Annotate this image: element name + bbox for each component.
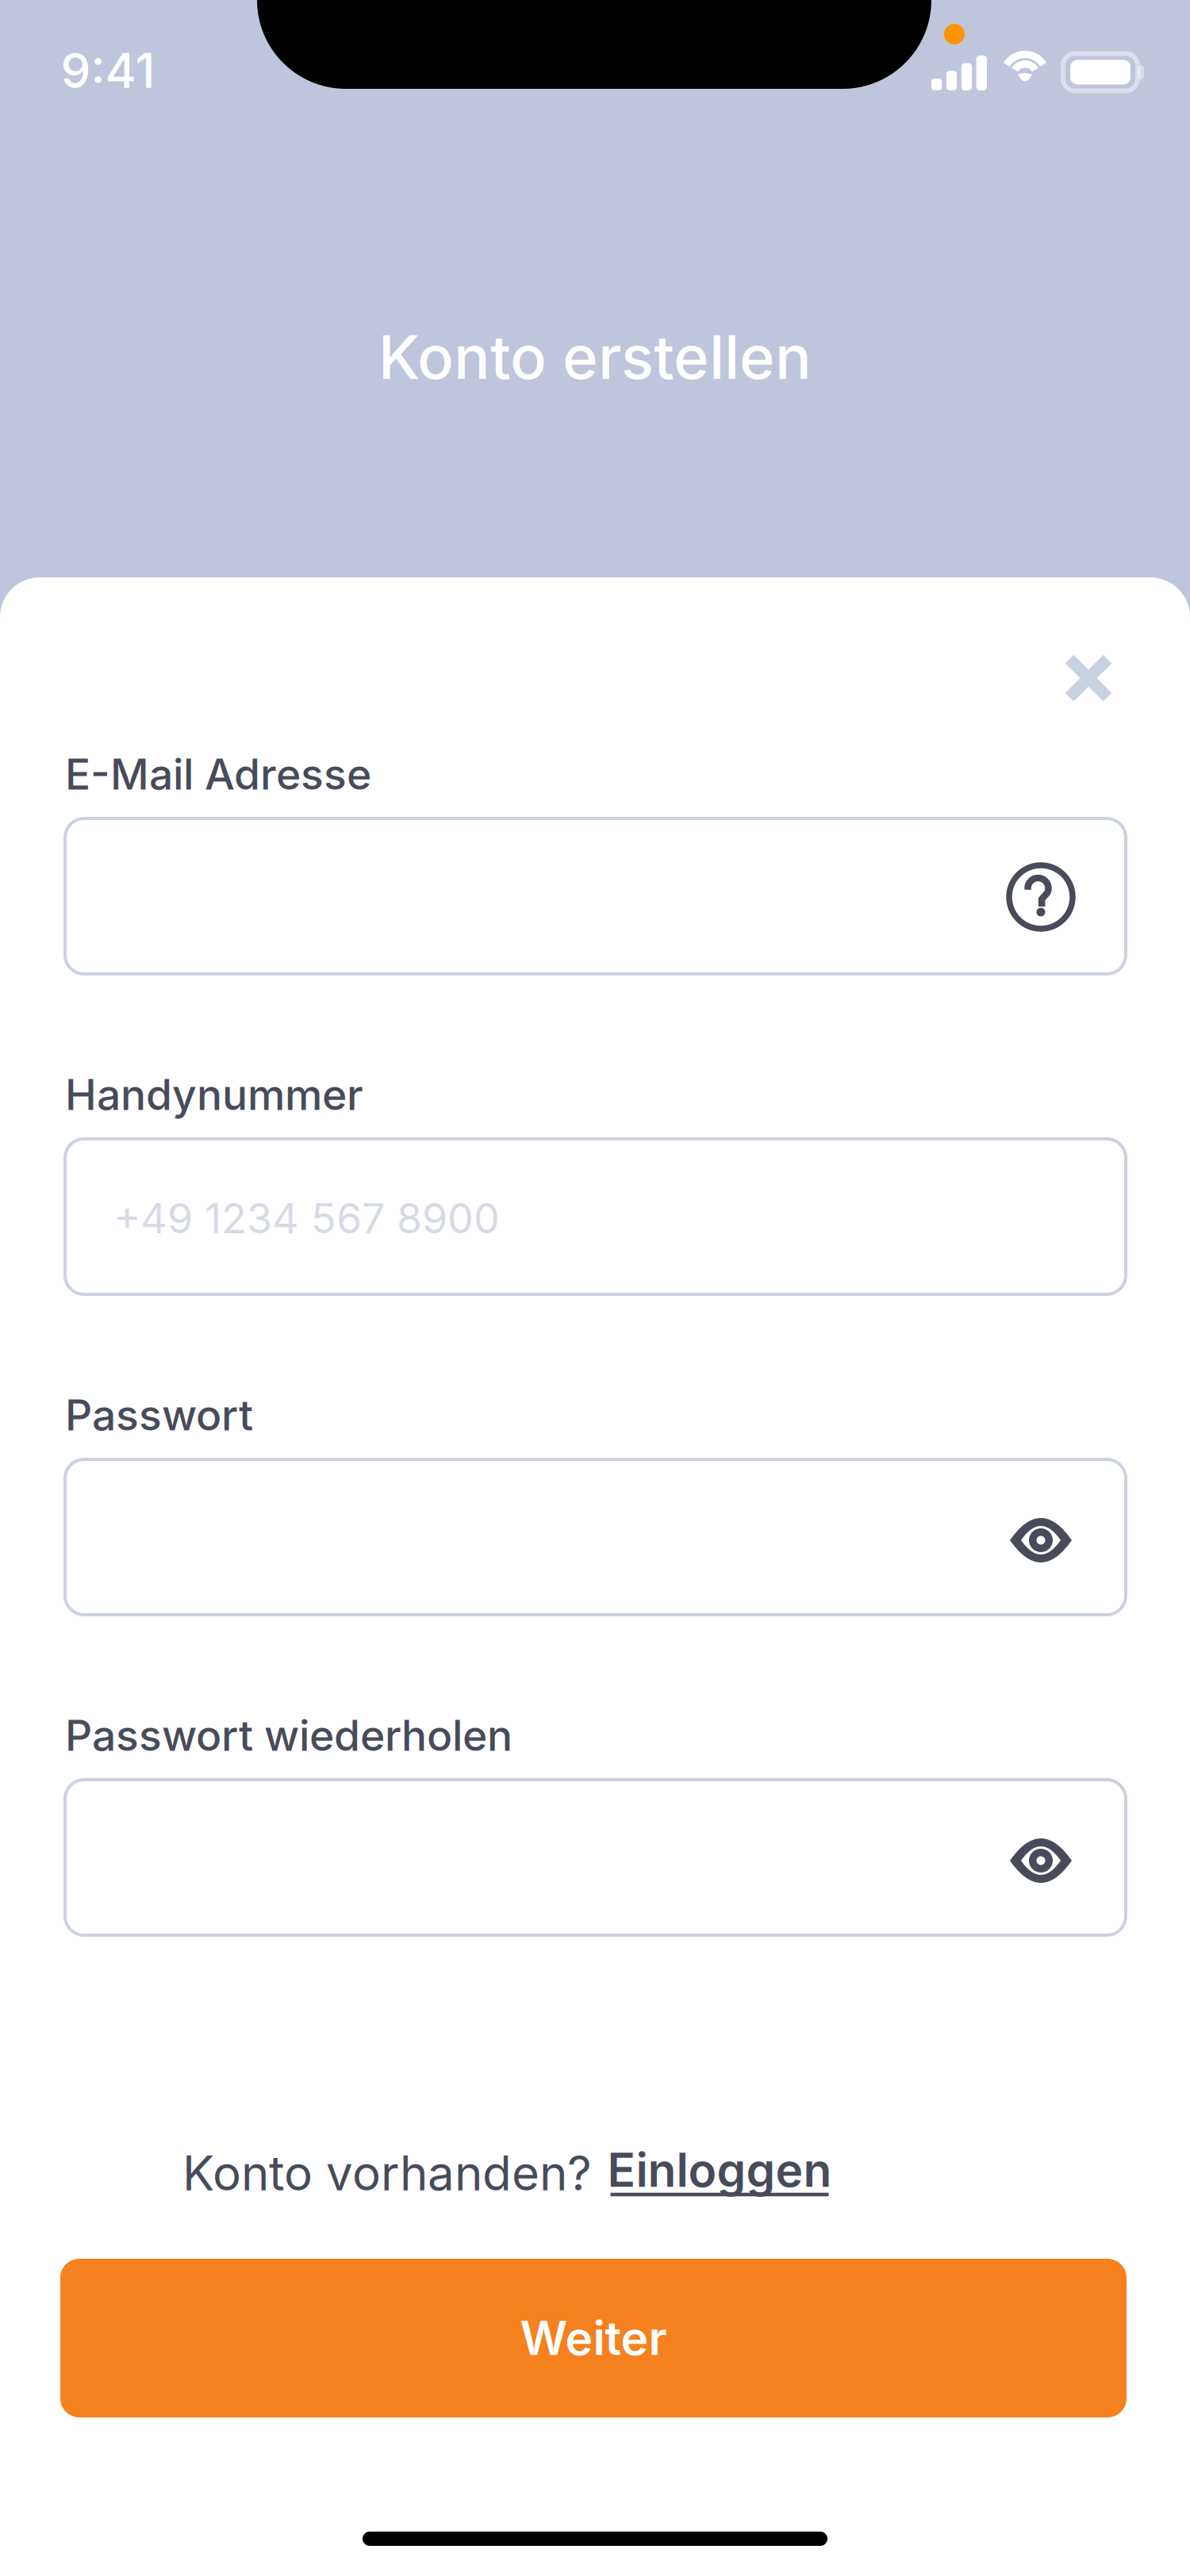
staticText: E-Mail Adresse: [65, 748, 371, 800]
staticText: 9:41: [61, 42, 155, 99]
staticText: Konto vorhanden?: [182, 2144, 592, 2202]
staticText: Passwort: [65, 1389, 253, 1440]
button[interactable]: Weiter: [60, 2259, 1127, 2417]
staticText: Weiter: [520, 2310, 667, 2366]
staticText: Konto erstellen: [378, 320, 812, 393]
button[interactable]: Einloggen: [610, 2141, 829, 2214]
staticText: +49 1234 567 8900: [113, 1193, 500, 1243]
staticText: Passwort wiederholen: [65, 1710, 512, 1761]
button[interactable]: Schließen: [1038, 627, 1139, 729]
staticText: Handynummer: [65, 1069, 363, 1120]
staticText: Einloggen: [607, 2142, 832, 2198]
